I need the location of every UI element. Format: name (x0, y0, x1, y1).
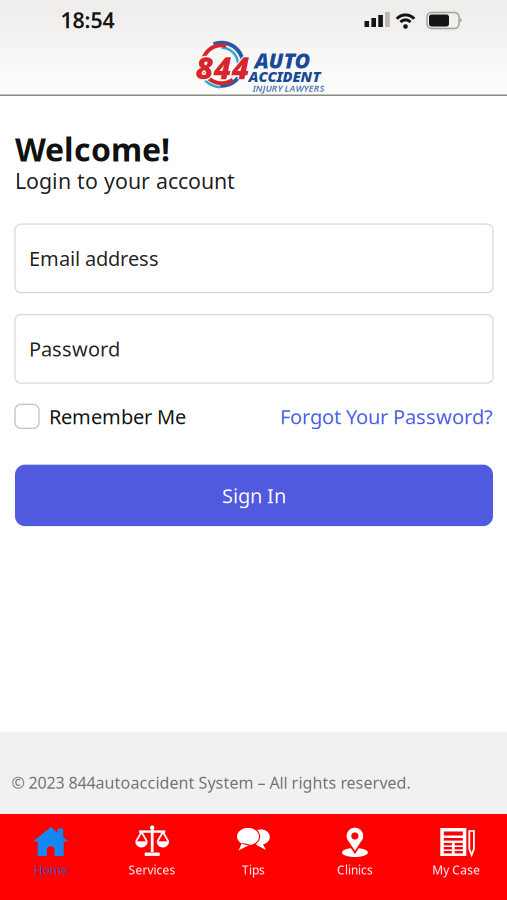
staticText: 844 (195, 48, 249, 89)
staticText: ACCIDENT (248, 66, 320, 86)
staticText: Login to your account (15, 166, 235, 195)
button[interactable]: Email address (15, 224, 493, 293)
button[interactable]: My Case (406, 814, 507, 900)
staticText: Password (29, 336, 120, 362)
staticText: Services (129, 862, 176, 878)
button[interactable]: Clinics (304, 814, 406, 900)
staticText: © 2023 844autoaccident System – All righ… (11, 772, 410, 793)
button[interactable]: Sign In (15, 465, 493, 526)
staticText: Sign In (222, 482, 286, 509)
staticText: 18:54 (60, 6, 114, 34)
staticText: AUTO (254, 46, 310, 74)
staticText: INJURY LAWYERS (252, 82, 324, 94)
staticText: 844 (197, 47, 251, 88)
button[interactable]: Forgot Your Password? (280, 403, 493, 430)
button[interactable]: Tips (203, 814, 304, 900)
staticText: 844 (195, 47, 249, 88)
button[interactable]: Services (101, 814, 203, 900)
staticText: 844 (195, 45, 249, 86)
staticText: My Case (432, 862, 480, 878)
staticText: Remember Me (49, 403, 186, 430)
staticText: Home (34, 862, 68, 878)
button[interactable]: Remember Me (15, 403, 186, 430)
staticText: 844 (194, 47, 248, 88)
button[interactable]: Home (0, 814, 101, 900)
staticText: Forgot Your Password? (280, 403, 493, 430)
staticText: Welcome! (15, 128, 170, 170)
staticText: Email address (29, 245, 159, 272)
button[interactable]: Password (15, 315, 493, 383)
staticText: Clinics (337, 862, 373, 878)
staticText: Tips (242, 862, 265, 878)
